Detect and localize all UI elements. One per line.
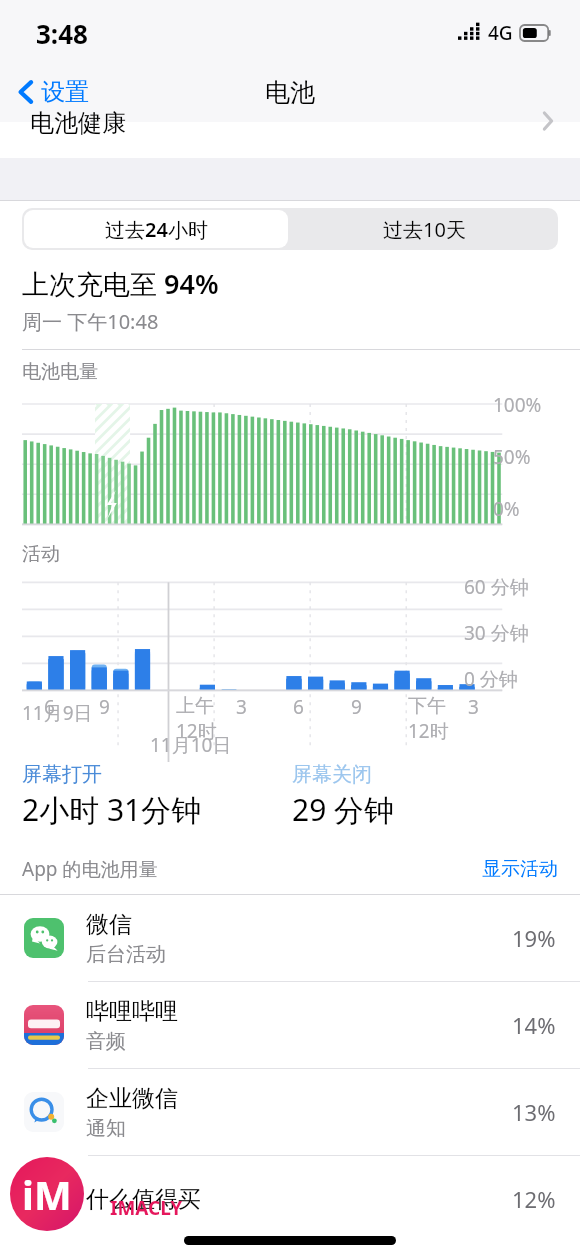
staticText: iM bbox=[22, 1167, 72, 1221]
staticText: 0 分钟 bbox=[464, 666, 518, 692]
staticText: 12% bbox=[512, 1184, 556, 1214]
staticText: 屏幕关闭 bbox=[292, 762, 372, 787]
button[interactable]: 设置 bbox=[14, 73, 93, 111]
staticText: App 的电池用量 bbox=[22, 856, 158, 882]
staticText: 3:48 bbox=[36, 16, 88, 51]
staticText: 9 bbox=[351, 694, 362, 720]
staticText: 9 bbox=[99, 694, 110, 720]
staticText: 12时 bbox=[408, 718, 449, 744]
staticText: 29 分钟 bbox=[292, 789, 395, 830]
button[interactable]: 企业微信 bbox=[0, 1069, 580, 1155]
staticText: 后台活动 bbox=[86, 942, 166, 967]
staticText: 电池电量 bbox=[22, 360, 98, 384]
staticText: IMACLY bbox=[110, 1195, 183, 1221]
staticText: 上次充电至 94% bbox=[22, 265, 219, 302]
staticText: 下午 bbox=[408, 694, 446, 718]
staticText: 屏幕打开 bbox=[22, 762, 102, 787]
staticText: 周一 下午10:48 bbox=[22, 308, 159, 335]
staticText: 企业微信 bbox=[86, 1084, 178, 1113]
staticText: 3 bbox=[468, 694, 479, 720]
staticText: 100% bbox=[493, 392, 542, 418]
staticText: 电池 bbox=[265, 77, 315, 108]
staticText: 6 bbox=[293, 694, 304, 720]
staticText: 19% bbox=[512, 923, 556, 953]
staticText: 通知 bbox=[86, 1116, 126, 1141]
staticText: 50% bbox=[493, 444, 531, 470]
button[interactable]: 哔哩哔哩 bbox=[0, 982, 580, 1068]
staticText: 3 bbox=[236, 694, 247, 720]
staticText: 哔哩哔哩 bbox=[86, 997, 178, 1026]
staticText: 音频 bbox=[86, 1029, 126, 1054]
staticText: 什么值得买 bbox=[86, 1185, 201, 1214]
staticText: 6 bbox=[44, 694, 55, 720]
button[interactable]: 什么值得买 bbox=[0, 1156, 580, 1242]
staticText: 过去24小时 bbox=[105, 216, 208, 243]
staticText: 电池健康 bbox=[30, 108, 126, 138]
staticText: 显示活动 bbox=[482, 857, 558, 881]
staticText: 14% bbox=[512, 1010, 556, 1040]
staticText: 30 分钟 bbox=[464, 620, 529, 646]
staticText: 11月9日 bbox=[22, 700, 93, 726]
staticText: 设置 bbox=[41, 77, 89, 107]
staticText: 上午 bbox=[176, 694, 214, 718]
staticText: 4G bbox=[488, 20, 513, 46]
staticText: 过去10天 bbox=[383, 216, 466, 243]
staticText: 微信 bbox=[86, 910, 132, 939]
button[interactable]: 过去24小时 bbox=[24, 210, 288, 248]
button[interactable]: 过去10天 bbox=[290, 208, 558, 250]
staticText: 11月10日 bbox=[150, 732, 232, 758]
staticText: 0% bbox=[493, 496, 520, 522]
staticText: 活动 bbox=[22, 542, 60, 566]
staticText: 60 分钟 bbox=[464, 574, 529, 600]
staticText: 12时 bbox=[176, 718, 217, 744]
staticText: 2小时 31分钟 bbox=[22, 789, 202, 830]
staticText: 13% bbox=[512, 1097, 556, 1127]
button[interactable]: 微信 bbox=[0, 895, 580, 981]
button[interactable]: 显示活动 bbox=[482, 857, 558, 881]
